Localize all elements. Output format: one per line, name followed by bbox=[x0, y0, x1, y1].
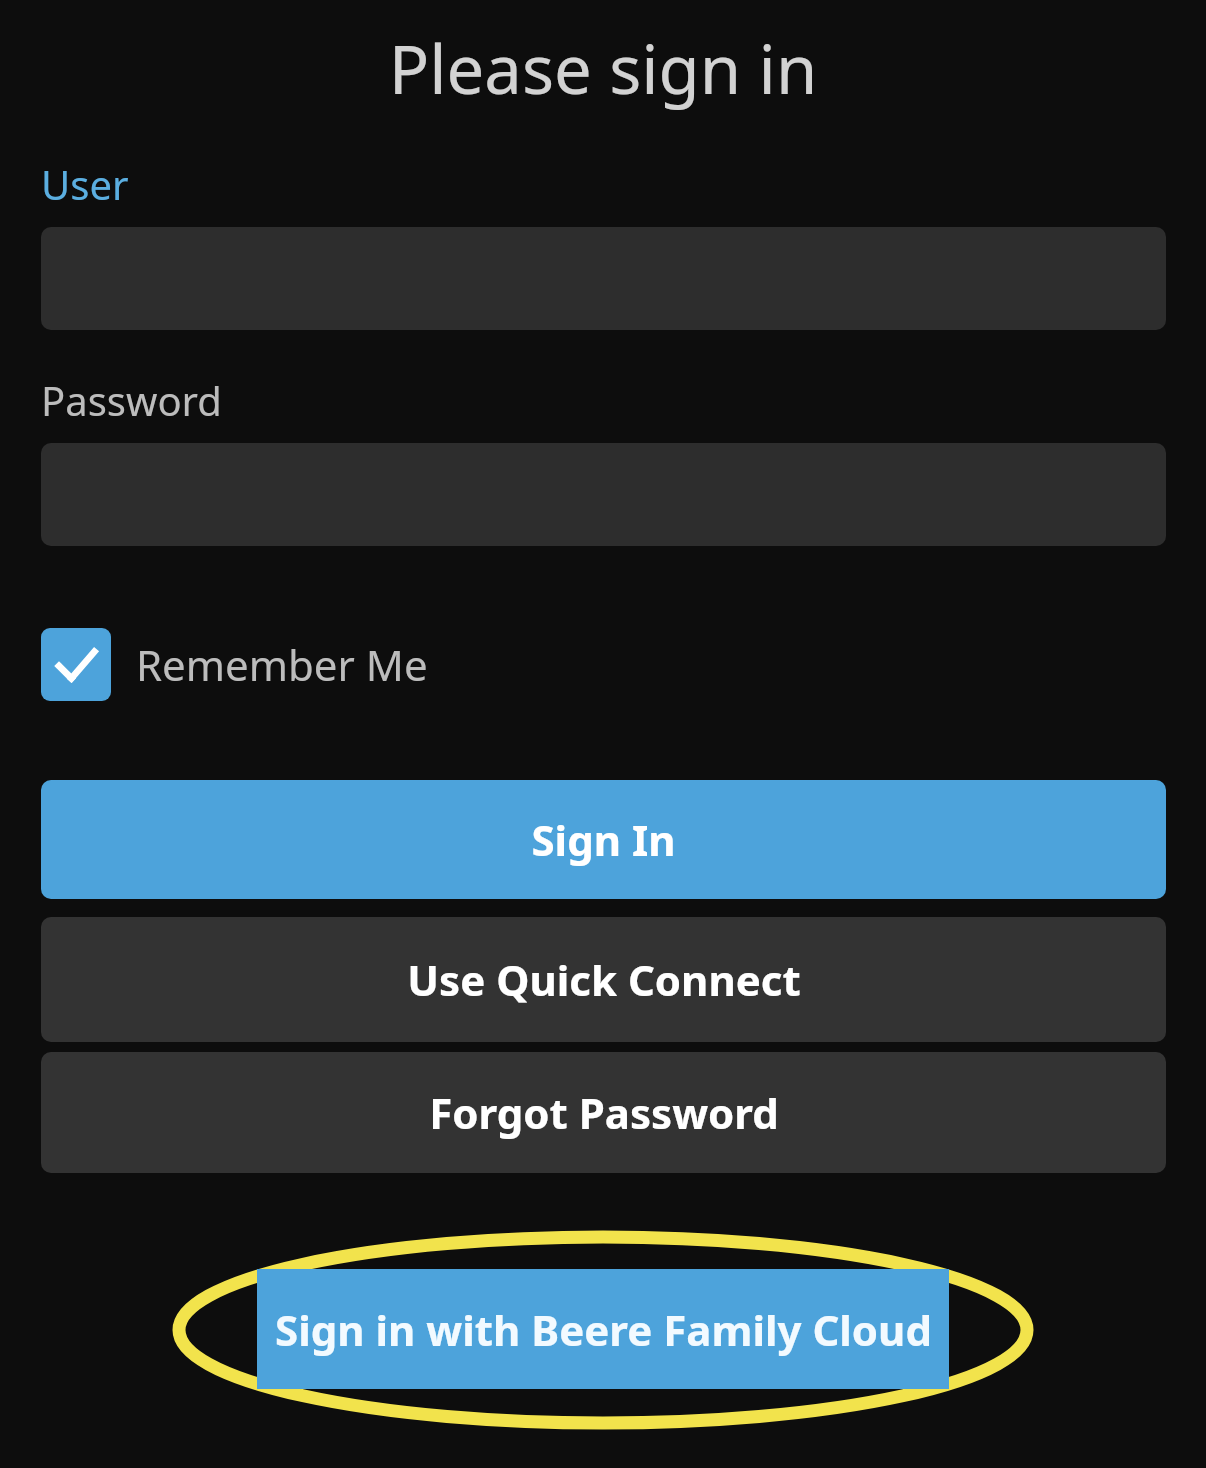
staticText: Forgot Password bbox=[429, 1084, 779, 1141]
button[interactable]: Use Quick Connect bbox=[41, 917, 1166, 1042]
staticText: Remember Me bbox=[136, 636, 428, 693]
staticText: Password bbox=[41, 373, 222, 427]
staticText: Use Quick Connect bbox=[407, 951, 801, 1008]
button[interactable]: Forgot Password bbox=[41, 1052, 1166, 1173]
staticText: Sign In bbox=[531, 811, 676, 868]
staticText: User bbox=[41, 157, 129, 211]
button[interactable]: Remember Me bbox=[41, 628, 428, 701]
button[interactable]: Sign In bbox=[41, 780, 1166, 899]
staticText: Sign in with Beere Family Cloud bbox=[275, 1301, 932, 1358]
staticText: Please sign in bbox=[0, 22, 1206, 113]
button[interactable]: Sign in with Beere Family Cloud bbox=[257, 1269, 949, 1389]
